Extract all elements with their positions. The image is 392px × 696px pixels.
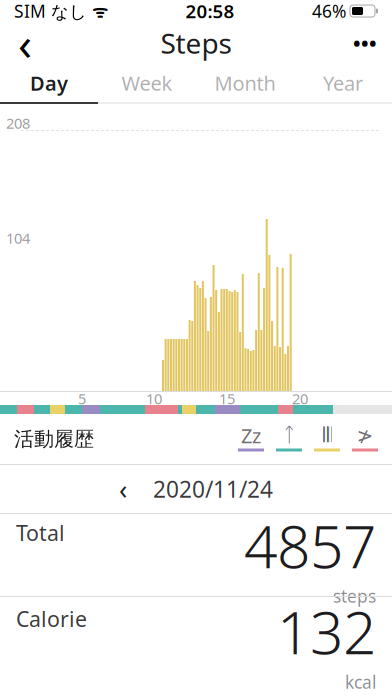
button[interactable]: run <box>352 425 378 453</box>
button[interactable]: Back <box>0 22 50 64</box>
staticText: 活動履歴 <box>14 427 94 451</box>
staticText: Month <box>214 70 275 96</box>
staticText: Steps <box>160 24 231 62</box>
button[interactable]: ‹ <box>0 465 392 513</box>
staticText: ᛏ <box>283 426 295 445</box>
staticText: ᯤ <box>87 0 108 22</box>
staticText: 46% <box>312 0 346 22</box>
staticText: 104 <box>6 228 30 248</box>
staticText: Zz <box>241 422 261 449</box>
button[interactable]: Day <box>0 64 98 102</box>
staticText: 𝄃𝄃 <box>323 426 331 445</box>
button[interactable]: Week <box>98 64 196 102</box>
staticText: ≯ <box>356 424 373 447</box>
staticText: ‹ <box>18 13 32 73</box>
button[interactable]: Activity type <box>238 425 264 453</box>
button[interactable]: Year <box>294 64 392 102</box>
button[interactable]: walk <box>314 425 340 453</box>
staticText: ‹ <box>119 471 127 507</box>
staticText: 208 <box>6 113 30 133</box>
staticText: 2020/11/24 <box>153 474 273 504</box>
button[interactable]: Activity type <box>276 425 302 453</box>
button[interactable]: More options <box>338 22 392 64</box>
staticText: Year <box>323 70 363 96</box>
button[interactable]: Month <box>196 64 294 102</box>
staticText: 15 <box>219 389 235 408</box>
staticText: Total <box>16 518 65 547</box>
staticText: 5 <box>78 389 86 408</box>
staticText: 20:58 <box>185 0 234 23</box>
staticText: 10 <box>146 389 162 408</box>
staticText: 132 <box>277 592 376 670</box>
staticText: SIM なし <box>14 0 87 22</box>
staticText: ••• <box>353 30 377 56</box>
staticText: Day <box>30 70 68 96</box>
staticText: Calorie <box>16 604 87 633</box>
staticText: Week <box>121 70 172 96</box>
staticText: 20 <box>292 389 308 408</box>
staticText: steps <box>333 584 376 607</box>
staticText: kcal <box>345 670 376 693</box>
staticText: 4857 <box>244 506 376 584</box>
